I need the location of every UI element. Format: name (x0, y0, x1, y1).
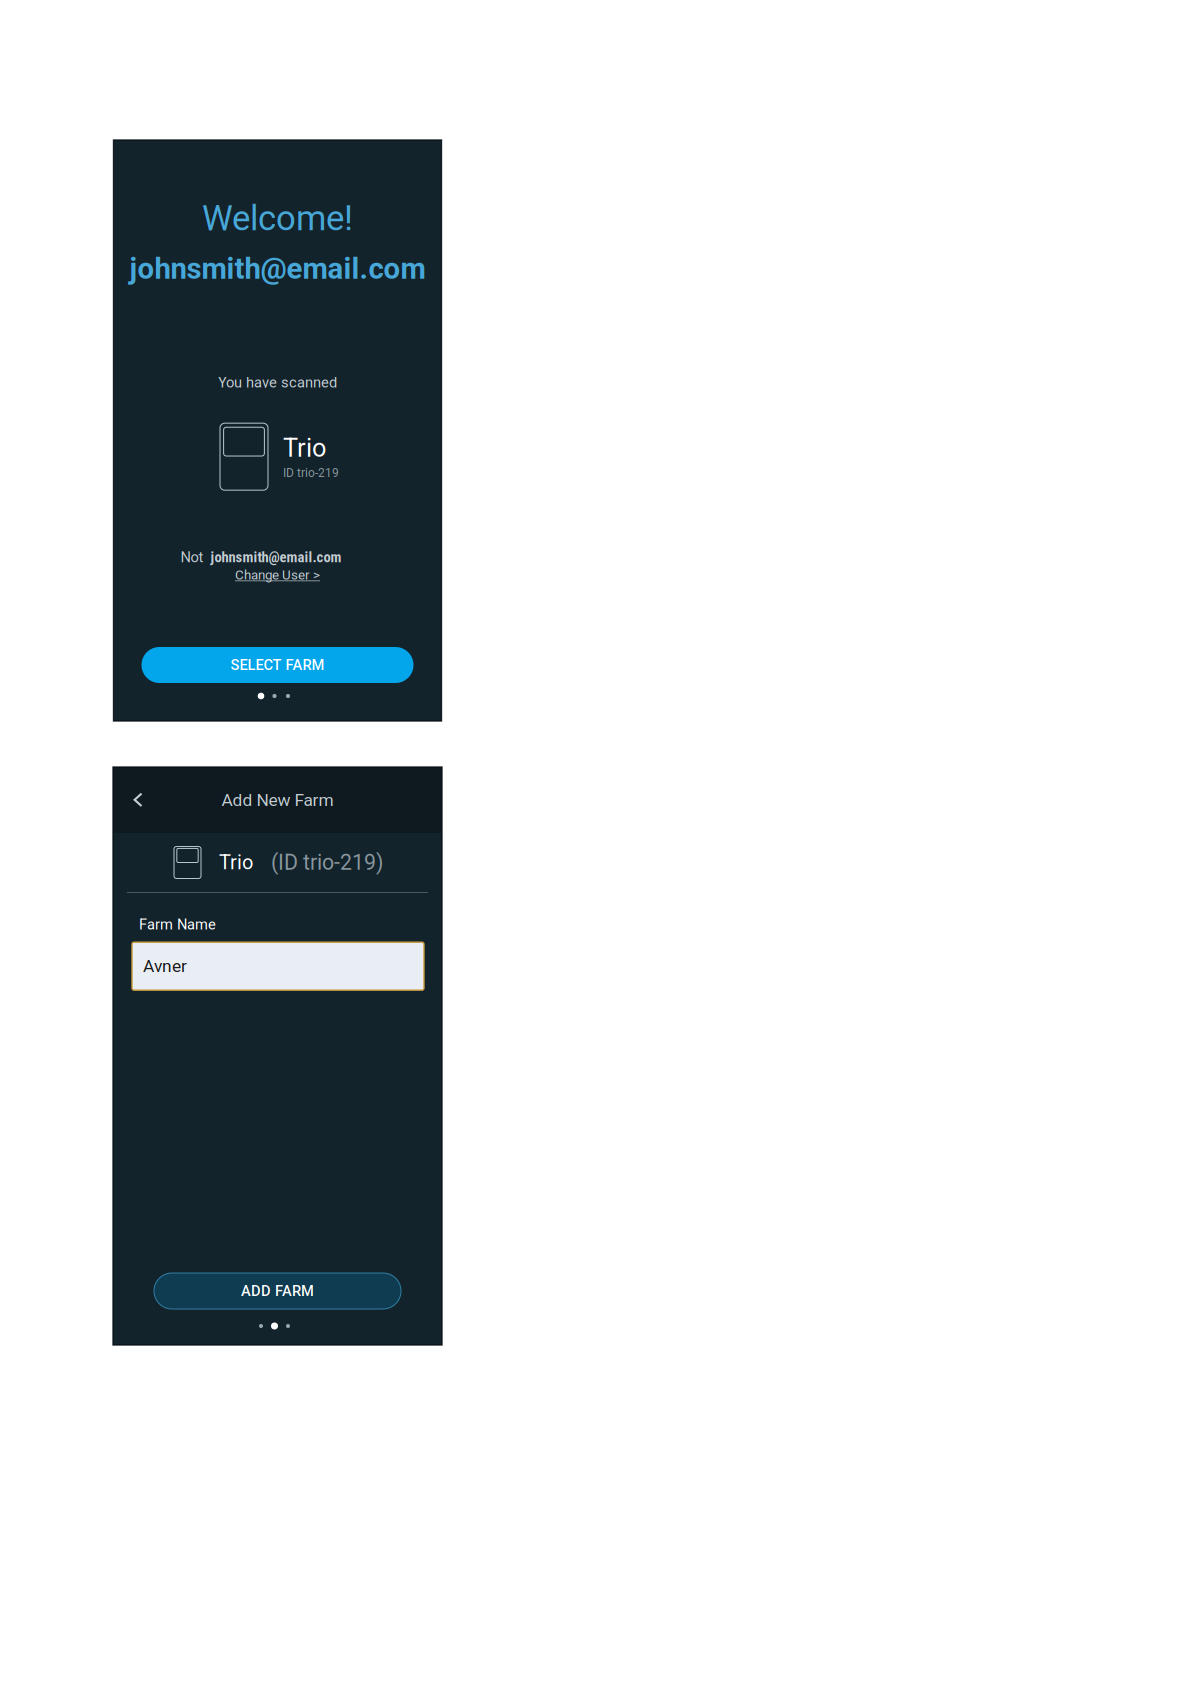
staticText: Add New Farm (221, 790, 333, 810)
staticText: ID trio-219 (283, 466, 339, 480)
staticText: You have scanned (218, 374, 337, 391)
staticText: Trio (219, 851, 253, 874)
button[interactable]: SELECT FARM (141, 647, 413, 683)
staticText: (ID trio-219) (271, 850, 383, 875)
button[interactable]: Change User > (235, 567, 320, 583)
staticText: Change User > (235, 567, 320, 583)
staticText: johnsmith@email.com (129, 252, 425, 286)
staticText: Not (180, 549, 203, 566)
staticText: johnsmith@email.com (210, 549, 341, 566)
staticText: Avner (143, 956, 187, 976)
staticText: Welcome! (202, 198, 353, 239)
button[interactable]: Back (117, 778, 159, 822)
staticText: Trio (283, 433, 326, 463)
button[interactable]: ADD FARM (154, 1273, 401, 1309)
staticText: ADD FARM (241, 1282, 314, 1300)
staticText: SELECT FARM (230, 656, 324, 674)
staticText: Farm Name (139, 916, 216, 933)
